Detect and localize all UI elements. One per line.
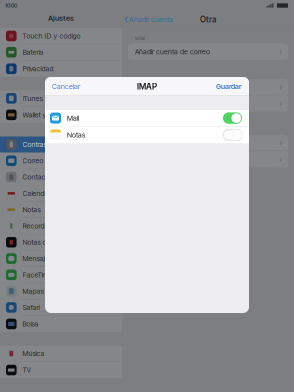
button[interactable]: Calendario <box>0 185 122 202</box>
staticText: Correo <box>23 156 44 165</box>
staticText: Añadir cuenta de correo <box>135 47 210 56</box>
staticText: Notas <box>23 205 41 214</box>
button[interactable]: Safari <box>0 299 122 316</box>
staticText: Touch ID y código <box>23 32 81 40</box>
button[interactable]: Mensajes <box>0 251 122 267</box>
button[interactable]: Contraseñas y cuentas <box>0 136 122 153</box>
staticText: Mensajes <box>23 254 52 263</box>
staticText: Añadir cuenta <box>129 15 173 24</box>
staticText: Notas <box>67 131 85 139</box>
button[interactable]: Añadir cuenta de notas <box>128 135 288 151</box>
staticText: Batería <box>23 48 44 56</box>
button[interactable]: Notas <box>0 202 122 218</box>
button[interactable]: Añadir recordatorios <box>128 151 288 167</box>
button[interactable]: Recordatorios <box>0 218 122 234</box>
staticText: Contactos <box>23 173 55 181</box>
staticText: Privacidad <box>23 64 54 73</box>
button[interactable]: Mapas <box>0 283 122 299</box>
staticText: IMAP <box>137 81 157 91</box>
staticText: Mail <box>67 114 79 122</box>
button[interactable]: Notas de voz <box>0 234 122 251</box>
staticText: Calendario <box>23 189 56 198</box>
staticText: Bolsa <box>23 320 39 328</box>
staticText: Añadir cuenta de contactos <box>135 83 221 91</box>
staticText: Mapas <box>23 287 44 295</box>
button[interactable]: Añadir cuenta de correo <box>128 43 288 60</box>
staticText: Música <box>23 349 45 358</box>
staticText: 10:00 <box>5 2 17 9</box>
button[interactable]: TV <box>0 362 122 378</box>
staticText: iTunes Store y App Store <box>23 94 99 103</box>
staticText: Guardar <box>216 82 242 91</box>
button[interactable]: Añadir cuenta <box>122 13 173 26</box>
staticText: TV <box>23 366 31 374</box>
button[interactable]: Mail <box>45 110 249 127</box>
button[interactable]: Batería <box>0 44 122 61</box>
button[interactable]: iTunes Store y App Store <box>0 90 122 107</box>
button[interactable]: Música <box>0 346 122 362</box>
button[interactable]: Touch ID y código <box>0 28 122 44</box>
button[interactable]: Bolsa <box>0 316 122 332</box>
staticText: Recordatorios <box>23 222 65 230</box>
staticText: Ajustes <box>48 13 74 22</box>
button[interactable]: Notas <box>45 127 249 143</box>
staticText: Añadir cuenta de notas <box>135 138 207 147</box>
button[interactable]: Cancelar <box>45 78 87 95</box>
staticText: Otra <box>200 15 216 24</box>
staticText: Contraseñas y cuentas <box>23 140 95 149</box>
staticText: Safari <box>23 303 40 312</box>
button[interactable]: Guardar <box>209 78 249 95</box>
button[interactable]: Correo <box>0 153 122 169</box>
staticText: FaceTime <box>23 271 53 279</box>
staticText: Wallet y Apple Pay <box>23 111 80 119</box>
staticText: MAIL <box>135 35 147 42</box>
button[interactable]: Wallet y Apple Pay <box>0 107 122 123</box>
button[interactable]: FaceTime <box>0 267 122 283</box>
button[interactable]: Añadir cuenta de contactos <box>128 79 288 95</box>
button[interactable]: Añadir cuenta de calendario <box>128 95 288 112</box>
button[interactable]: Contactos <box>0 169 122 185</box>
button[interactable]: Privacidad <box>0 61 122 77</box>
staticText: Cancelar <box>52 82 80 91</box>
staticText: Notas de voz <box>23 238 63 246</box>
